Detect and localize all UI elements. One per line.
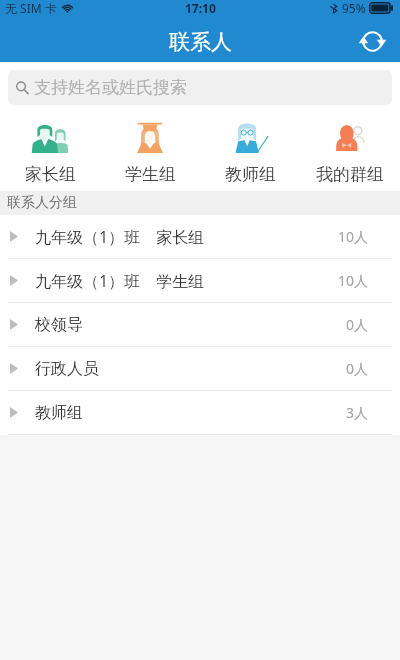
button[interactable]: 学生组	[100, 120, 200, 185]
button[interactable]: 我的群组	[300, 120, 400, 185]
staticText: 教师组	[225, 164, 276, 185]
staticText: 95%	[342, 0, 366, 16]
staticText: 3人	[346, 403, 369, 422]
staticText: 支持姓名或姓氏搜索	[34, 77, 187, 98]
button[interactable]: 支持姓名或姓氏搜索	[8, 70, 392, 105]
staticText: 10人	[338, 271, 369, 290]
staticText: 0人	[346, 359, 369, 378]
button[interactable]: 九年级（1）班 家长组	[0, 215, 400, 259]
staticText: 教师组	[35, 403, 83, 423]
button[interactable]: 教师组	[200, 120, 300, 185]
staticText: 九年级（1）班 家长组	[35, 226, 205, 248]
button[interactable]: 家长组	[0, 120, 100, 185]
staticText: 0人	[346, 315, 369, 334]
staticText: 家长组	[25, 164, 76, 185]
staticText: 行政人员	[35, 359, 99, 379]
staticText: 10人	[338, 227, 369, 246]
staticText: 联系人	[169, 29, 232, 55]
staticText: 学生组	[125, 164, 176, 185]
button[interactable]: 行政人员	[0, 347, 400, 391]
button[interactable]: Refresh	[358, 27, 386, 55]
button[interactable]: 教师组	[0, 391, 400, 435]
button[interactable]: 九年级（1）班 学生组	[0, 259, 400, 303]
staticText: 我的群组	[316, 164, 384, 185]
staticText: 无 SIM 卡	[5, 0, 57, 16]
staticText: 17:10	[185, 0, 216, 16]
staticText: 九年级（1）班 学生组	[35, 270, 205, 292]
staticText: 校领导	[35, 315, 83, 335]
staticText: 联系人分组	[7, 194, 77, 212]
button[interactable]: 校领导	[0, 303, 400, 347]
